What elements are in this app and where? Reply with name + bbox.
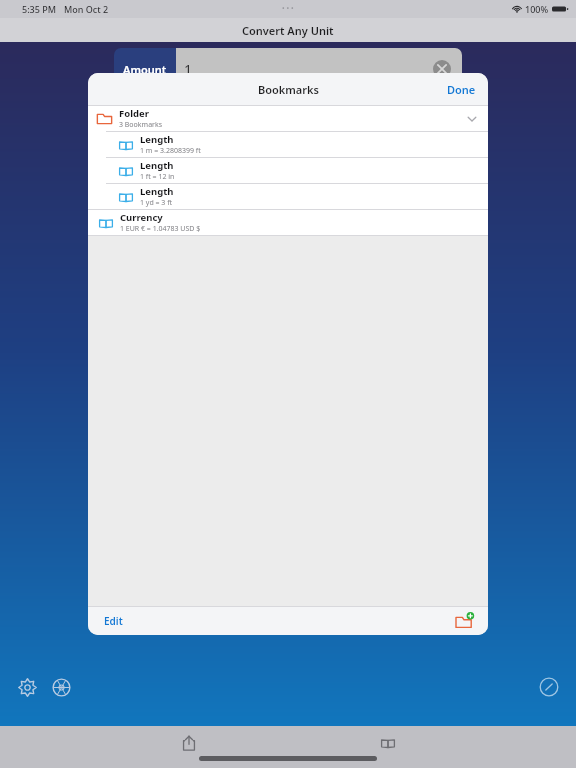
staticText: • • • <box>282 4 294 14</box>
button[interactable]: New Folder <box>452 609 476 633</box>
staticText: Convert Any Unit <box>242 23 334 38</box>
staticText: Folder <box>119 107 149 120</box>
staticText: Length <box>140 185 174 198</box>
staticText: 100% <box>525 3 549 15</box>
button[interactable]: Clear <box>432 59 452 79</box>
button[interactable]: Done <box>443 79 480 100</box>
button[interactable]: Share <box>176 730 202 756</box>
button[interactable]: Fractions <box>534 672 564 702</box>
button[interactable]: Length <box>88 158 488 183</box>
button[interactable]: Themes <box>46 672 76 702</box>
staticText: 1 ft = 12 in <box>140 172 175 182</box>
staticText: Edit <box>104 614 123 628</box>
staticText: Currency <box>120 211 163 224</box>
button[interactable]: Currency <box>88 210 488 235</box>
staticText: Bookmarks <box>258 82 319 97</box>
button[interactable]: Length <box>88 132 488 157</box>
staticText: Done <box>447 82 476 97</box>
button[interactable]: Folder <box>88 106 488 131</box>
staticText: Mon Oct 2 <box>64 3 109 15</box>
staticText: Length <box>140 133 174 146</box>
staticText: 1 <box>184 60 193 79</box>
button[interactable]: Bookmarks <box>375 730 401 756</box>
staticText: Length <box>140 159 174 172</box>
staticText: 1 EUR € = 1.04783 USD $ <box>120 224 201 234</box>
staticText: Amount <box>123 62 167 77</box>
staticText: 3 Bookmarks <box>119 120 163 130</box>
button[interactable] <box>114 95 462 135</box>
staticText: 1 m = 3.2808399 ft <box>140 146 201 156</box>
button[interactable]: Edit <box>100 611 127 631</box>
button[interactable]: Amount <box>114 48 462 90</box>
staticText: 1 yd = 3 ft <box>140 198 173 208</box>
button[interactable]: Length <box>88 184 488 209</box>
staticText: 5:35 PM <box>22 3 56 15</box>
button[interactable]: Settings <box>12 672 42 702</box>
